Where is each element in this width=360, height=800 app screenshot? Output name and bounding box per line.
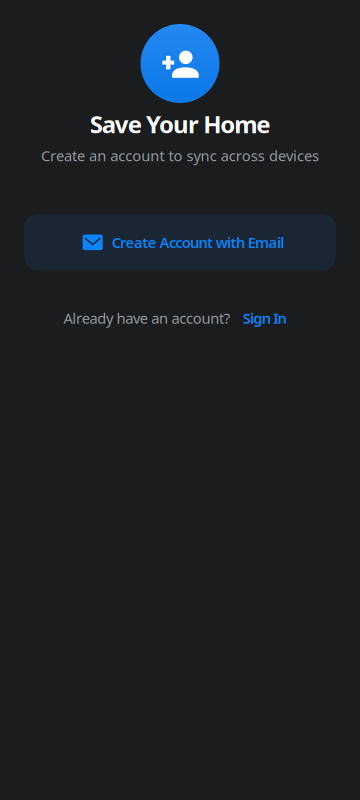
staticText: Already have an account? (63, 308, 230, 328)
staticText: Sign In (243, 308, 286, 328)
button[interactable]: Sign In (243, 308, 296, 328)
staticText: Save Your Home (90, 108, 270, 140)
staticText: Create an account to sync across devices (41, 146, 319, 165)
staticText: Create Account with Email (112, 233, 284, 252)
button[interactable]: Create Account with Email (24, 214, 336, 270)
